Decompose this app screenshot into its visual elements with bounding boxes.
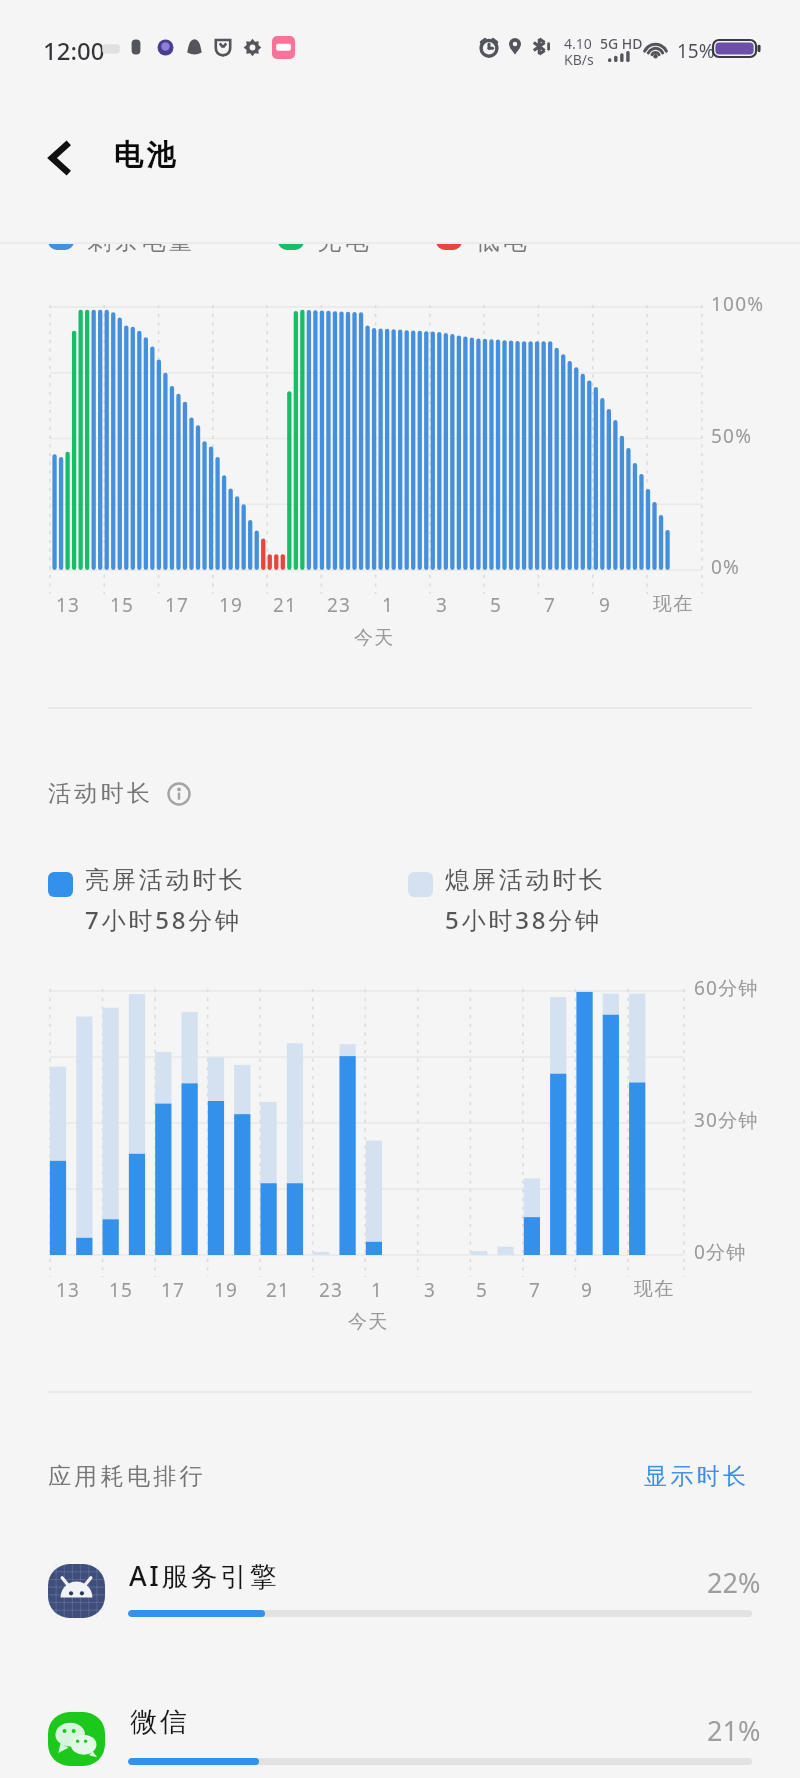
staticText: 微信 — [129, 1705, 188, 1739]
staticText: 15 — [110, 592, 135, 618]
staticText: 9 — [581, 1277, 594, 1303]
staticText: AI服务引擎 — [129, 1557, 280, 1594]
staticText: 9 — [599, 592, 612, 618]
staticText: 活动时长 — [48, 779, 154, 808]
staticText: 7 — [544, 592, 557, 618]
staticText: 0分钟 — [694, 1239, 747, 1265]
staticText: 应用耗电排行 — [48, 1462, 206, 1491]
staticText: 今天 — [348, 1310, 389, 1334]
staticText: 亮屏活动时长 — [85, 865, 246, 895]
staticText: 0% — [711, 554, 741, 580]
staticText: 5 — [476, 1277, 489, 1303]
staticText: 23 — [319, 1277, 344, 1303]
staticText: 4.10 — [564, 34, 592, 53]
staticText: 21 — [273, 592, 298, 618]
staticText: 50% — [711, 423, 753, 449]
staticText: 21% — [707, 1712, 761, 1749]
button[interactable]: Back — [22, 120, 98, 196]
staticText: 13 — [56, 1277, 81, 1303]
staticText: 5G HD — [600, 34, 643, 53]
staticText: 13 — [56, 592, 81, 618]
staticText: 19 — [214, 1277, 239, 1303]
staticText: 23 — [327, 592, 352, 618]
staticText: 现在 — [634, 1277, 675, 1301]
staticText: 12:00 — [43, 34, 105, 67]
staticText: 7小时58分钟 — [85, 903, 242, 936]
staticText: 19 — [219, 592, 244, 618]
staticText: 5 — [490, 592, 503, 618]
staticText: 100% — [711, 291, 765, 317]
staticText: 3 — [436, 592, 449, 618]
staticText: 低电 — [474, 244, 528, 256]
staticText: 电池 — [112, 137, 177, 174]
staticText: 60分钟 — [694, 975, 759, 1001]
button[interactable]: 显示时长 — [642, 1458, 752, 1495]
button[interactable]: 微信 — [0, 1681, 800, 1778]
staticText: 5小时38分钟 — [445, 903, 602, 936]
staticText: 30分钟 — [694, 1107, 759, 1133]
staticText: 7 — [529, 1277, 542, 1303]
staticText: KB/s — [564, 50, 594, 69]
staticText: 3 — [424, 1277, 437, 1303]
staticText: 熄屏活动时长 — [445, 865, 606, 895]
staticText: 充电 — [316, 244, 370, 256]
staticText: 21 — [266, 1277, 291, 1303]
staticText: 显示时长 — [644, 1462, 750, 1491]
staticText: 1 — [371, 1277, 384, 1303]
staticText: 15% — [677, 38, 715, 64]
staticText: 22% — [707, 1564, 761, 1601]
staticText: 17 — [165, 592, 190, 618]
staticText: 剩余电量 — [86, 244, 194, 256]
staticText: 今天 — [354, 626, 395, 650]
staticText: 15 — [109, 1277, 134, 1303]
button[interactable]: AI服务引擎 — [0, 1533, 800, 1645]
staticText: 现在 — [653, 592, 694, 616]
staticText: 17 — [161, 1277, 186, 1303]
staticText: 1 — [382, 592, 395, 618]
